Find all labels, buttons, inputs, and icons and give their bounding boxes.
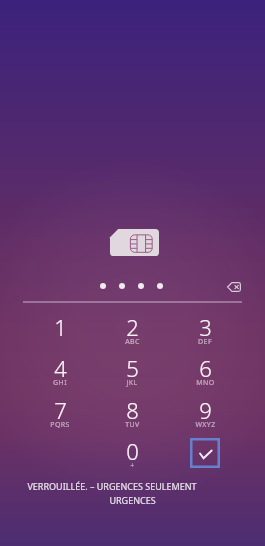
- button[interactable]: 5: [106, 351, 158, 389]
- staticText: 7: [54, 395, 67, 425]
- staticText: PQRS: [50, 420, 70, 430]
- staticText: GHI: [53, 378, 67, 388]
- staticText: 2: [126, 312, 139, 342]
- staticText: DEF: [198, 337, 212, 347]
- staticText: +: [130, 461, 135, 471]
- staticText: 1: [54, 312, 67, 342]
- button[interactable]: 0: [106, 434, 158, 472]
- staticText: 8: [126, 395, 139, 425]
- staticText: MNO: [196, 378, 215, 388]
- button[interactable]: 7: [34, 393, 86, 431]
- staticText: 3: [199, 312, 212, 342]
- button[interactable]: 3: [179, 310, 231, 348]
- staticText: URGENCES: [109, 494, 156, 506]
- staticText: VERROUILLÉE. – URGENCES SEULEMENT: [27, 480, 197, 492]
- staticText: 6: [199, 353, 212, 383]
- button[interactable]: 8: [106, 393, 158, 431]
- staticText: ABC: [125, 337, 140, 347]
- staticText: TUV: [125, 420, 140, 430]
- button[interactable]: 4: [34, 351, 86, 389]
- staticText: 0: [126, 436, 139, 466]
- staticText: 4: [54, 353, 67, 383]
- button[interactable]: Confirm PIN: [190, 438, 220, 468]
- button[interactable]: Backspace: [217, 272, 251, 300]
- button[interactable]: 9: [179, 393, 231, 431]
- staticText: 5: [126, 353, 139, 383]
- staticText: WXYZ: [195, 420, 216, 430]
- staticText: 9: [199, 395, 212, 425]
- button[interactable]: URGENCES: [0, 494, 265, 508]
- staticText: JKL: [126, 378, 138, 388]
- button[interactable]: 2: [106, 310, 158, 348]
- button[interactable]: 1: [34, 310, 86, 348]
- button[interactable]: 6: [179, 351, 231, 389]
